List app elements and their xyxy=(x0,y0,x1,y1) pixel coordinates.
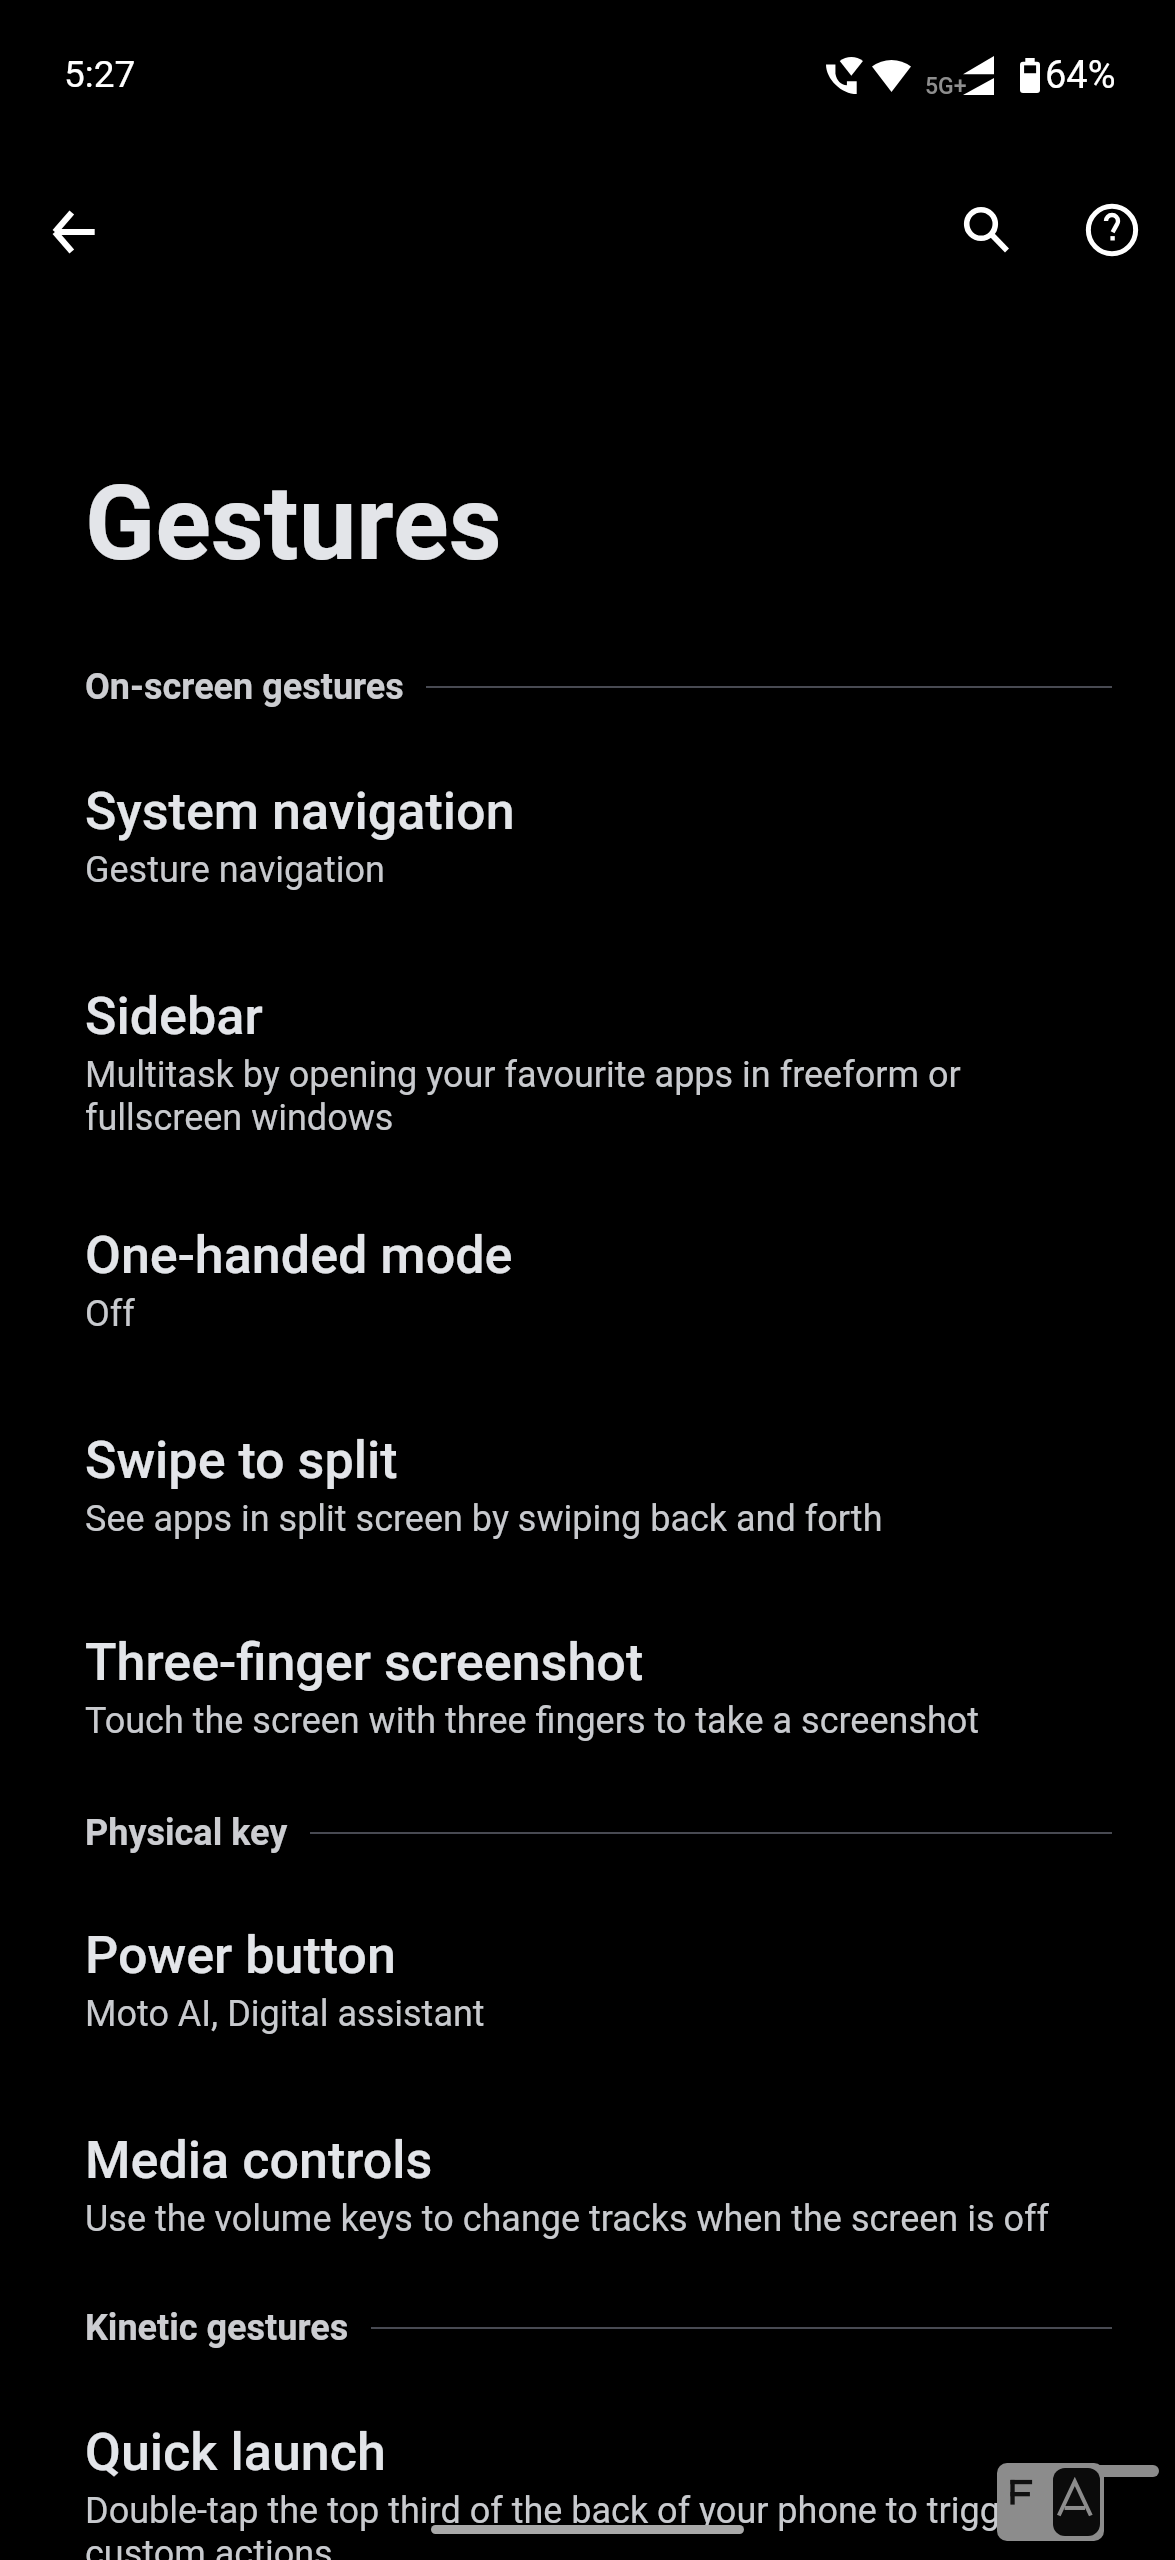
staticText: Three-finger screenshot xyxy=(85,1632,644,1693)
staticText: On-screen gestures xyxy=(85,666,404,708)
staticText: 5:27 xyxy=(64,53,136,96)
staticText: Kinetic gestures xyxy=(85,2307,349,2349)
button[interactable]: Sidebar xyxy=(0,951,1175,1154)
staticText: Media controls xyxy=(85,2130,433,2191)
staticText: Swipe to split xyxy=(85,1430,398,1491)
button[interactable]: Search xyxy=(936,180,1040,284)
staticText: System navigation xyxy=(85,781,515,842)
button[interactable]: Three-finger screenshot xyxy=(0,1597,1175,1757)
staticText: Quick launch xyxy=(85,2422,386,2483)
staticText: See apps in split screen by swiping back… xyxy=(85,1498,1115,1540)
button[interactable]: Help xyxy=(1060,178,1164,282)
button[interactable]: Swipe to split xyxy=(0,1395,1175,1555)
button[interactable]: Quick launch xyxy=(0,2387,1175,2514)
button[interactable]: Power button xyxy=(0,1890,1175,2050)
staticText: Use the volume keys to change tracks whe… xyxy=(85,2198,1115,2240)
staticText: Touch the screen with three fingers to t… xyxy=(85,1700,1115,1742)
staticText: Sidebar xyxy=(85,986,263,1047)
staticText: Multitask by opening your favourite apps… xyxy=(85,1054,1115,1139)
staticText: 64% xyxy=(1045,53,1116,98)
staticText: Off xyxy=(85,1293,1115,1335)
staticText: 5G+ xyxy=(925,73,967,100)
staticText: Gesture navigation xyxy=(85,849,1115,891)
staticText: One-handed mode xyxy=(85,1225,513,1286)
staticText: Double-tap the top third of the back of … xyxy=(85,2490,1115,2560)
staticText: Gestures xyxy=(85,463,502,584)
staticText: Moto AI, Digital assistant xyxy=(85,1993,1115,2035)
button[interactable]: System navigation xyxy=(0,746,1175,906)
button[interactable]: Back xyxy=(21,180,125,284)
button[interactable]: Media controls xyxy=(0,2095,1175,2255)
staticText: Power button xyxy=(85,1925,396,1986)
button[interactable]: One-handed mode xyxy=(0,1190,1175,1350)
staticText: Physical key xyxy=(85,1812,288,1854)
